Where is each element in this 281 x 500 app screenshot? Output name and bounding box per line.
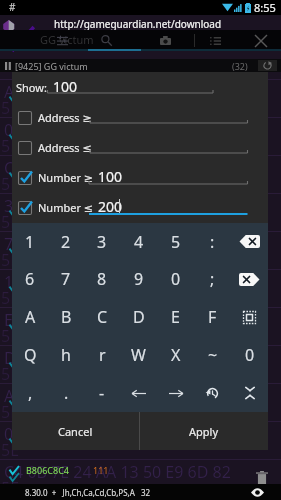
staticText: 5E	[1, 173, 20, 195]
staticText: 5E	[1, 211, 20, 233]
button[interactable]: Delete	[256, 471, 268, 485]
button[interactable]: 7	[48, 260, 84, 298]
button[interactable]: E	[157, 298, 194, 336]
staticText: #	[9, 0, 16, 14]
staticText: 00 2F 5C D1 88 04 BE 6A 31 9F	[4, 119, 229, 141]
button[interactable]: A	[12, 298, 48, 336]
button[interactable]: Backspace	[231, 223, 268, 260]
staticText: 7	[61, 268, 71, 290]
button[interactable]: Delete	[231, 260, 268, 298]
staticText: Q	[24, 344, 37, 366]
button[interactable]: Visibility	[251, 488, 264, 497]
button[interactable]: 0	[231, 336, 268, 374]
staticText: B	[61, 306, 72, 328]
button[interactable]: 6	[12, 260, 48, 298]
staticText: Address ≤	[38, 140, 92, 155]
button[interactable]: 9	[120, 260, 157, 298]
staticText: 100	[53, 77, 78, 96]
button[interactable]: 3	[84, 223, 120, 260]
button[interactable]: Show:	[12, 72, 268, 102]
staticText: C4 0B 7E 24 AA 13 50 E9 6D 82	[4, 461, 231, 483]
staticText: 0	[171, 268, 181, 290]
staticText: Cancel	[58, 424, 93, 439]
staticText: 1	[25, 231, 35, 253]
button[interactable]: D	[120, 298, 157, 336]
staticText: http://gameguardian.net/download	[54, 17, 222, 31]
staticText: 100	[98, 167, 123, 186]
button[interactable]: Collapse	[231, 374, 268, 412]
staticText: 5E	[1, 401, 20, 423]
button[interactable]: C	[84, 298, 120, 336]
other: Delete	[239, 273, 260, 286]
staticText: Address ≥	[38, 110, 92, 125]
staticText: 5E	[1, 97, 20, 119]
other: Backspace	[239, 235, 260, 248]
button[interactable]: 4	[120, 223, 157, 260]
button[interactable]: Number ≥	[12, 162, 268, 192]
button[interactable]: Refresh	[258, 60, 277, 71]
staticText: 5E	[1, 363, 20, 385]
staticText: 35 F0 18 6B D4 27 9C 4E A0 55	[4, 195, 230, 217]
staticText: 8:55	[254, 0, 276, 15]
button[interactable]: 8	[84, 260, 120, 298]
staticText: 3	[97, 231, 107, 253]
staticText: ,	[28, 382, 33, 404]
staticText: A	[25, 306, 36, 328]
staticText: C	[97, 306, 108, 328]
button[interactable]: ~	[194, 336, 231, 374]
button[interactable]: 0	[157, 260, 194, 298]
button[interactable]: Close	[255, 35, 267, 47]
button[interactable]: 1	[12, 223, 48, 260]
staticText: X	[171, 344, 181, 366]
staticText: 5E	[1, 325, 20, 347]
staticText: 5E	[1, 477, 20, 499]
button[interactable]: Left	[120, 374, 157, 412]
staticText: -	[99, 382, 105, 404]
button[interactable]: Q	[12, 336, 48, 374]
button[interactable]: ;	[194, 260, 231, 298]
staticText: 0	[245, 344, 255, 366]
button[interactable]: h	[48, 336, 84, 374]
button[interactable]: 5	[157, 223, 194, 260]
staticText: GG victum	[40, 32, 94, 47]
button[interactable]: Cancel	[12, 412, 139, 450]
button[interactable]: Select	[231, 298, 268, 336]
staticText: [9425] GG victum	[15, 60, 88, 72]
button[interactable]: -	[84, 374, 120, 412]
staticText: Number ≤	[38, 200, 94, 215]
staticText: 5E	[1, 135, 20, 157]
staticText: 18 A7 3C 5F 81 29 B6 04 70 CE	[4, 271, 228, 293]
button[interactable]: ,	[12, 374, 48, 412]
staticText: Number ≥	[38, 170, 94, 185]
staticText: 5E	[1, 439, 20, 461]
button[interactable]: Undo	[194, 374, 231, 412]
staticText: A1 C2 00 FF 3D 42 91 0C 77 AB	[4, 385, 231, 407]
other: Undo	[206, 387, 219, 400]
button[interactable]: .	[48, 374, 84, 412]
button[interactable]: :	[194, 223, 231, 260]
button[interactable]: r	[84, 336, 120, 374]
staticText: D6 82 B1 20 52 F3 60 44 C2 0A	[4, 347, 230, 369]
staticText: Apply	[189, 424, 219, 439]
staticText: :	[210, 231, 215, 253]
staticText: Show:	[16, 80, 47, 95]
button[interactable]: Apply	[140, 412, 268, 450]
button[interactable]: Number ≤	[12, 192, 268, 222]
staticText: 7B 33 C9 15 62 E1 08 DD 4A 90	[4, 233, 233, 255]
button[interactable]: W	[120, 336, 157, 374]
button[interactable]: 2	[48, 223, 84, 260]
staticText: (32)	[232, 60, 248, 72]
button[interactable]: F	[194, 298, 231, 336]
button[interactable]: X	[157, 336, 194, 374]
staticText: B806C8C4	[26, 464, 69, 476]
button[interactable]: B	[48, 298, 84, 336]
button[interactable]: Address ≤	[12, 132, 268, 162]
staticText: 8	[97, 268, 107, 290]
other: Right	[169, 388, 183, 399]
staticText: 2	[61, 231, 71, 253]
other: Left	[132, 388, 146, 399]
other: Collapse	[245, 386, 255, 400]
button[interactable]: Address ≥	[12, 102, 268, 132]
button[interactable]: Right	[157, 374, 194, 412]
staticText: A1 C2 00 FF 3D 42 91 0C 77 AB	[4, 81, 231, 103]
